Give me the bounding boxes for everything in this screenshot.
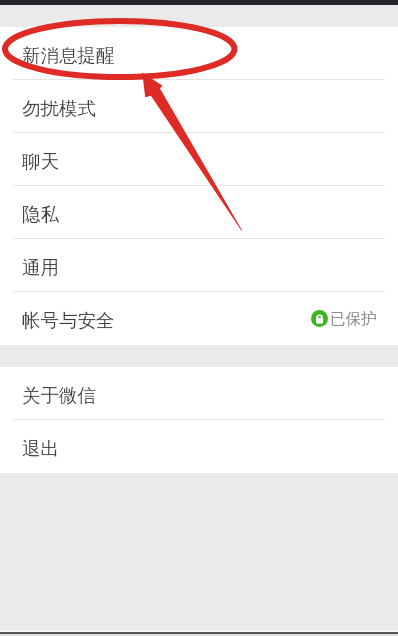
staticText: 聊天 bbox=[22, 150, 59, 173]
staticText: 退出 bbox=[22, 437, 59, 460]
button[interactable]: 新消息提醒 bbox=[0, 27, 398, 80]
staticText: 勿扰模式 bbox=[22, 97, 96, 120]
staticText: 隐私 bbox=[22, 203, 59, 226]
other: Account protected bbox=[311, 310, 328, 327]
button[interactable]: 帐号与安全 bbox=[0, 292, 398, 345]
staticText: 关于微信 bbox=[22, 384, 96, 407]
button[interactable]: 隐私 bbox=[0, 186, 398, 239]
staticText: 通用 bbox=[22, 256, 59, 279]
staticText: 帐号与安全 bbox=[22, 309, 115, 332]
button[interactable]: 聊天 bbox=[0, 133, 398, 186]
button[interactable]: 勿扰模式 bbox=[0, 80, 398, 133]
staticText: 新消息提醒 bbox=[22, 44, 115, 67]
button[interactable]: 通用 bbox=[0, 239, 398, 292]
staticText: 已保护 bbox=[330, 309, 377, 329]
button[interactable]: 退出 bbox=[0, 420, 398, 473]
button[interactable]: 关于微信 bbox=[0, 367, 398, 420]
